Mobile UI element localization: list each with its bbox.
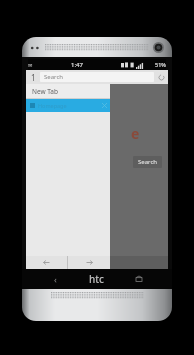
button[interactable]: Home [121, 269, 156, 289]
button[interactable]: Back [26, 256, 67, 269]
staticText: htc [89, 272, 105, 286]
button[interactable]: Reload [154, 70, 168, 84]
staticText: 51% [155, 61, 166, 68]
button[interactable]: Tabs [26, 70, 168, 84]
staticText: Search [138, 158, 157, 166]
button[interactable]: Search [40, 72, 154, 82]
button[interactable]: Back [38, 269, 72, 289]
staticText: 1 [31, 72, 36, 83]
staticText: 1:47 [71, 61, 83, 69]
staticText: ✉ [28, 62, 33, 68]
staticText: e [131, 124, 140, 143]
staticText: New Tab [32, 87, 59, 96]
button[interactable]: Tabs [26, 70, 40, 84]
staticText: Homepage [38, 102, 98, 109]
staticText: ‹ [54, 273, 57, 285]
button[interactable]: Close tab [98, 99, 110, 112]
button[interactable]: Search [133, 156, 162, 168]
staticText: Search [44, 73, 63, 81]
button[interactable]: New Tab [26, 84, 110, 98]
button[interactable]: Forward [68, 256, 110, 269]
button[interactable]: Homepage [26, 99, 110, 112]
